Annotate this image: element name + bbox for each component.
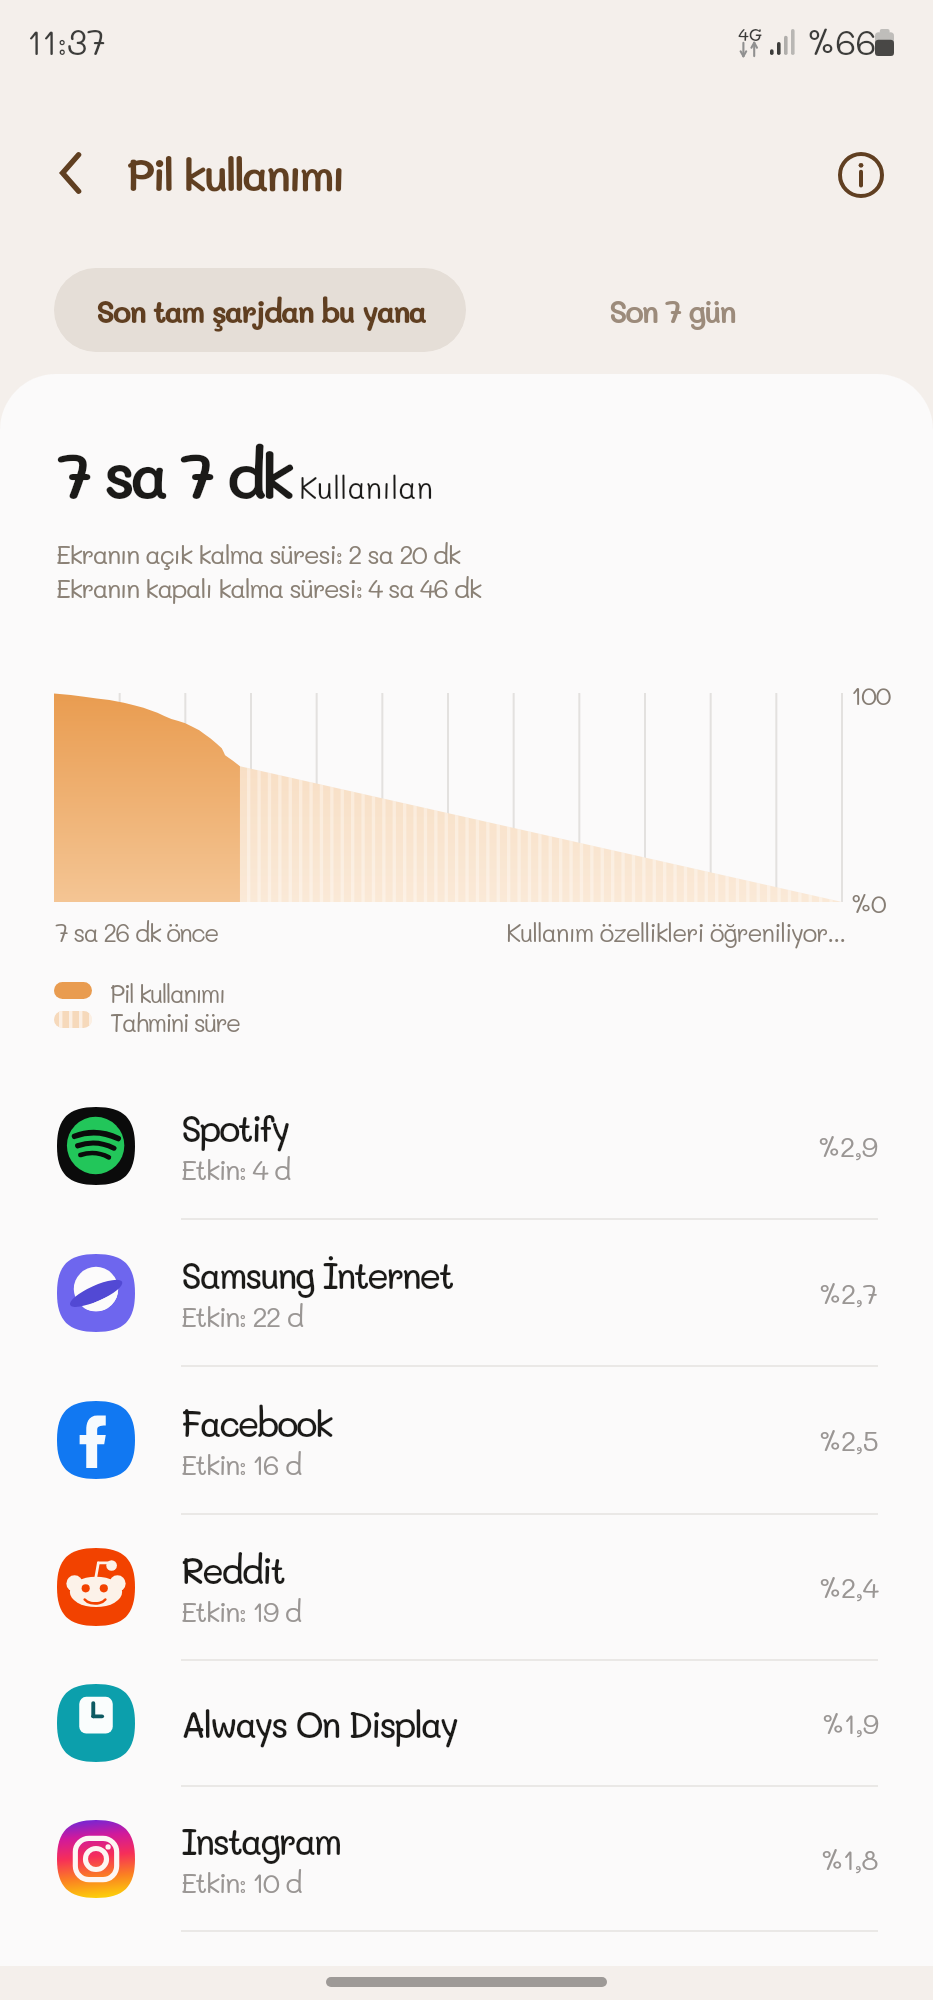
button[interactable]: Information xyxy=(825,139,897,211)
staticText: Pil kullanımı xyxy=(110,977,225,1009)
staticText: Etkin: 16 d xyxy=(181,1446,301,1482)
staticText: 11:37 xyxy=(27,18,106,64)
staticText: Son 7 gün xyxy=(609,290,735,330)
staticText: Etkin: 10 d xyxy=(181,1864,301,1900)
staticText: %1,9 xyxy=(821,1705,878,1741)
button[interactable]: Spotify xyxy=(0,1073,933,1218)
button[interactable]: Facebook xyxy=(0,1367,933,1513)
button[interactable]: Instagram xyxy=(0,1787,933,1930)
staticText: %2,4 xyxy=(818,1569,878,1605)
button[interactable]: Son tam şarjdan bu yana xyxy=(54,268,466,352)
staticText: Tahmini süre xyxy=(110,1006,240,1038)
staticText: Kullanılan xyxy=(299,468,433,507)
staticText: Etkin: 4 d xyxy=(181,1151,290,1187)
staticText: Always On Display xyxy=(181,1700,457,1747)
staticText: %2,7 xyxy=(818,1275,878,1311)
button[interactable]: Always On Display xyxy=(0,1661,933,1785)
staticText: %1,8 xyxy=(820,1841,878,1877)
staticText: 7 sa 26 dk önce xyxy=(55,916,218,948)
staticText: 7 sa 7 dk xyxy=(57,432,290,515)
staticText: Etkin: 22 d xyxy=(181,1298,303,1334)
staticText: %2,5 xyxy=(818,1422,878,1458)
staticText: %66 xyxy=(806,18,876,64)
button[interactable]: Samsung İnternet xyxy=(0,1220,933,1365)
staticText: Reddit xyxy=(181,1546,284,1593)
staticText: Pil kullanımı xyxy=(126,144,343,202)
staticText: 4G xyxy=(738,22,763,45)
button[interactable]: Son 7 gün xyxy=(466,268,878,352)
button[interactable]: Reddit xyxy=(0,1515,933,1659)
staticText: %2,9 xyxy=(817,1128,878,1164)
staticText: Samsung İnternet xyxy=(181,1251,452,1298)
staticText: Etkin: 19 d xyxy=(181,1593,301,1629)
staticText: Facebook xyxy=(181,1399,332,1446)
staticText: Ekranın açık kalma süresi: 2 sa 20 dk Ek… xyxy=(56,537,481,605)
staticText: Spotify xyxy=(181,1104,288,1151)
button[interactable]: Back xyxy=(36,137,108,209)
staticText: Instagram xyxy=(181,1817,340,1864)
staticText: 100 xyxy=(851,678,891,712)
staticText: %0 xyxy=(850,886,886,920)
staticText: Son tam şarjdan bu yana xyxy=(96,290,425,330)
staticText: Kullanım özellikleri öğreniliyor... xyxy=(506,916,845,948)
